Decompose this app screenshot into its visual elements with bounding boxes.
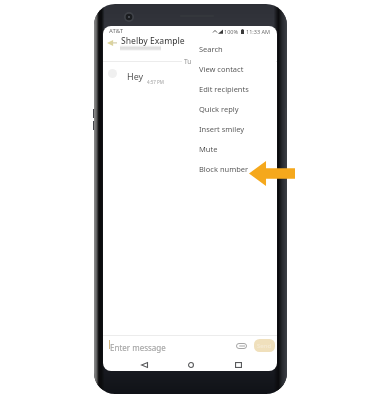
button[interactable]: Block number: [191, 159, 276, 179]
button[interactable]: Recent apps: [230, 357, 246, 371]
button[interactable]: Send: [254, 339, 275, 352]
staticText: Block number: [199, 164, 249, 174]
button[interactable]: Home: [183, 357, 199, 371]
staticText: Hey: [127, 70, 144, 82]
staticText: Enter message: [110, 342, 166, 353]
staticText: Insert smiley: [199, 124, 245, 134]
staticText: Mute: [199, 144, 218, 154]
staticText: Edit recipients: [199, 84, 249, 94]
staticText: Quick reply: [199, 104, 239, 114]
button[interactable]: Back: [104, 34, 119, 52]
button[interactable]: Quick reply: [191, 99, 276, 119]
staticText: Tue: [184, 57, 195, 66]
staticText: Search: [199, 44, 223, 54]
staticText: 4:57 PM: [147, 79, 164, 85]
staticText: Shelby Example: [121, 35, 185, 47]
staticText: 11:33 AM: [246, 28, 270, 35]
button[interactable]: Mute: [191, 139, 276, 159]
button[interactable]: Edit recipients: [191, 79, 276, 99]
button[interactable]: Search: [191, 39, 276, 59]
staticText: Send: [257, 342, 272, 350]
button[interactable]: Back: [136, 357, 152, 371]
button[interactable]: Insert smiley: [191, 119, 276, 139]
staticText: AT&T: [109, 27, 123, 35]
button[interactable]: Attach: [235, 340, 247, 352]
staticText: 100%: [224, 28, 239, 35]
staticText: View contact: [199, 64, 244, 74]
button[interactable]: View contact: [191, 59, 276, 79]
